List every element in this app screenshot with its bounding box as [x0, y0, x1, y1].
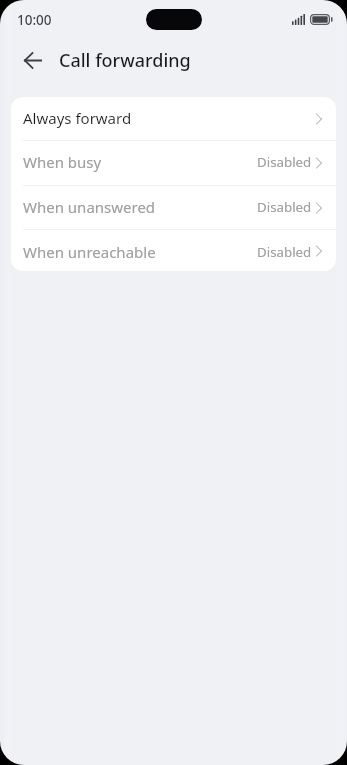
button[interactable]: When unanswered — [11, 186, 336, 229]
button[interactable]: Always forward — [11, 97, 336, 140]
staticText: When unreachable — [23, 242, 156, 262]
staticText: Disabled — [257, 198, 312, 216]
staticText: When busy — [23, 152, 102, 172]
staticText: 10:00 — [17, 11, 52, 29]
button[interactable]: When busy — [11, 141, 336, 185]
staticText: Disabled — [257, 153, 312, 171]
staticText: Always forward — [23, 108, 132, 128]
button[interactable]: Back — [13, 40, 53, 80]
staticText: When unanswered — [23, 197, 156, 217]
staticText: Call forwarding — [59, 48, 191, 73]
button[interactable]: When unreachable — [11, 230, 336, 271]
staticText: Disabled — [257, 243, 312, 261]
